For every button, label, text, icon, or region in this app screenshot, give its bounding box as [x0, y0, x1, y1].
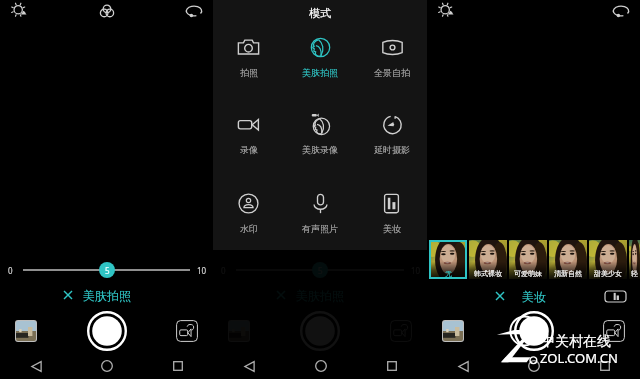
button[interactable]: 全景自拍 [356, 36, 427, 82]
staticText: 录像 [240, 144, 258, 155]
staticText: 水印 [240, 223, 258, 234]
staticText: 0 [8, 265, 13, 276]
staticText: 0 [221, 265, 226, 276]
button[interactable]: Shutter [87, 311, 127, 351]
button[interactable]: Recents [166, 354, 190, 378]
button[interactable]: 美肤拍照 [83, 288, 131, 303]
staticText: 清新自然 [554, 269, 582, 278]
button[interactable]: Home [95, 354, 119, 378]
button[interactable]: Back [451, 354, 475, 378]
staticText: 无 [445, 269, 452, 278]
staticText: 5 [318, 265, 323, 276]
button[interactable]: 拍照 [213, 36, 284, 82]
button[interactable]: Beauty level 5 [312, 262, 328, 278]
button[interactable]: Flash [435, 0, 457, 22]
staticText: 美肤拍照 [302, 67, 338, 78]
button[interactable]: Switch to video [390, 320, 412, 342]
button[interactable]: Makeup kit [604, 290, 627, 303]
staticText: 美妆 [383, 223, 401, 234]
staticText: ZOL.COM.CN [540, 349, 618, 367]
button[interactable]: 美妆 [356, 192, 427, 238]
button[interactable]: 轻 [629, 240, 640, 279]
staticText: 中关村在线 [541, 333, 611, 351]
button[interactable]: Recents [380, 354, 404, 378]
button[interactable]: Beauty level 5 [99, 262, 115, 278]
button[interactable]: 有声照片 [284, 192, 355, 238]
button[interactable]: 录像 [213, 113, 284, 159]
button[interactable]: 美妆 [522, 289, 546, 304]
button[interactable]: Close [272, 286, 290, 304]
button[interactable]: Home [522, 354, 546, 378]
button[interactable]: Back [237, 354, 261, 378]
button[interactable]: 美肤拍照 [296, 288, 344, 303]
staticText: 可爱萌妹 [514, 269, 542, 278]
staticText: 10 [197, 265, 207, 276]
button[interactable]: Flash [8, 0, 30, 22]
staticText: 5 [105, 265, 110, 276]
button[interactable]: Gallery [442, 320, 464, 342]
button[interactable]: 延时摄影 [356, 113, 427, 159]
button[interactable]: Beauty [610, 0, 632, 22]
staticText: 甜美少女 [594, 269, 622, 278]
button[interactable]: 韩式裸妆 [469, 240, 507, 279]
button[interactable]: Home [309, 354, 333, 378]
staticText: 拍照 [240, 67, 258, 78]
button[interactable]: Gallery [15, 320, 37, 342]
button[interactable]: Shutter [300, 311, 340, 351]
button[interactable]: 美肤录像 [284, 113, 355, 159]
button[interactable]: 可爱萌妹 [509, 240, 547, 279]
staticText: 10 [411, 265, 421, 276]
button[interactable]: Close [59, 286, 77, 304]
button[interactable]: 清新自然 [549, 240, 587, 279]
button[interactable]: 甜美少女 [589, 240, 627, 279]
button[interactable]: Switch to video [176, 320, 198, 342]
staticText: 韩式裸妆 [474, 269, 502, 278]
staticText: 美肤录像 [302, 144, 338, 155]
button[interactable]: Back [24, 354, 48, 378]
button[interactable]: Color filters [96, 0, 118, 22]
button[interactable]: 美肤拍照 [284, 36, 355, 82]
button[interactable]: Close [491, 287, 509, 305]
button[interactable]: Gallery [228, 320, 250, 342]
button[interactable]: 无 [429, 240, 467, 279]
button[interactable]: Recents [593, 354, 617, 378]
staticText: 模式 [309, 6, 331, 20]
button[interactable]: 水印 [213, 192, 284, 238]
button[interactable]: Switch to video [603, 320, 625, 342]
button[interactable]: Beauty [183, 0, 205, 22]
staticText: 有声照片 [302, 223, 338, 234]
staticText: 延时摄影 [374, 144, 410, 155]
staticText: 全景自拍 [374, 67, 410, 78]
button[interactable]: Shutter [514, 311, 554, 351]
staticText: 轻 [631, 269, 638, 278]
